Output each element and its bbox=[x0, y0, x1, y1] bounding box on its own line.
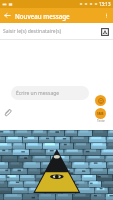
staticText: Nouveau message bbox=[15, 12, 70, 20]
button[interactable]: Écrire un message bbox=[11, 86, 89, 100]
button[interactable]: More options bbox=[101, 10, 112, 21]
button[interactable]: Emoji bbox=[95, 95, 106, 106]
staticText: Saisir le(s) destinataire(s) bbox=[3, 28, 62, 35]
staticText: Texte bbox=[97, 119, 105, 123]
staticText: 13:13 bbox=[99, 1, 111, 7]
staticText: Écrire un message bbox=[16, 90, 60, 97]
button[interactable]: Send message bbox=[95, 108, 106, 119]
button[interactable]: Back bbox=[2, 10, 13, 21]
button[interactable]: Contacts bbox=[99, 26, 111, 38]
button[interactable]: Attach file bbox=[1, 106, 12, 117]
staticText: SMS bbox=[97, 112, 104, 116]
